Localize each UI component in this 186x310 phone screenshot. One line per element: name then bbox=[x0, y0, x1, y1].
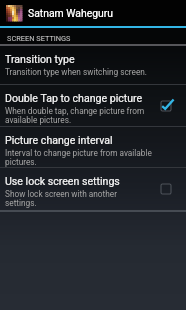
staticText: Double Tap to change picture bbox=[5, 92, 143, 104]
button[interactable]: Use lock screen settings bbox=[0, 168, 186, 210]
staticText: Use lock screen settings bbox=[5, 175, 120, 187]
other: App icon bbox=[6, 5, 22, 21]
staticText: SCREEN SETTINGS bbox=[7, 34, 71, 43]
staticText: Picture change interval bbox=[5, 134, 113, 146]
staticText: Satnam Waheguru bbox=[28, 7, 114, 19]
button[interactable]: App icon bbox=[0, 0, 186, 26]
button[interactable]: Double Tap to change picture bbox=[0, 85, 186, 126]
staticText: Transition type when switching screen. bbox=[5, 67, 147, 77]
staticText: When double tap, change picture from ava… bbox=[5, 106, 153, 125]
button[interactable]: Double Tap to change picture bbox=[146, 85, 186, 126]
staticText: Transition type bbox=[5, 53, 75, 65]
staticText: Show lock screen with another settings. bbox=[5, 189, 142, 208]
button[interactable]: Picture change interval bbox=[0, 127, 186, 167]
staticText: Interval to change picture from availabl… bbox=[5, 148, 160, 167]
button[interactable]: Use lock screen settings bbox=[146, 168, 186, 210]
button[interactable]: Transition type bbox=[0, 46, 186, 84]
